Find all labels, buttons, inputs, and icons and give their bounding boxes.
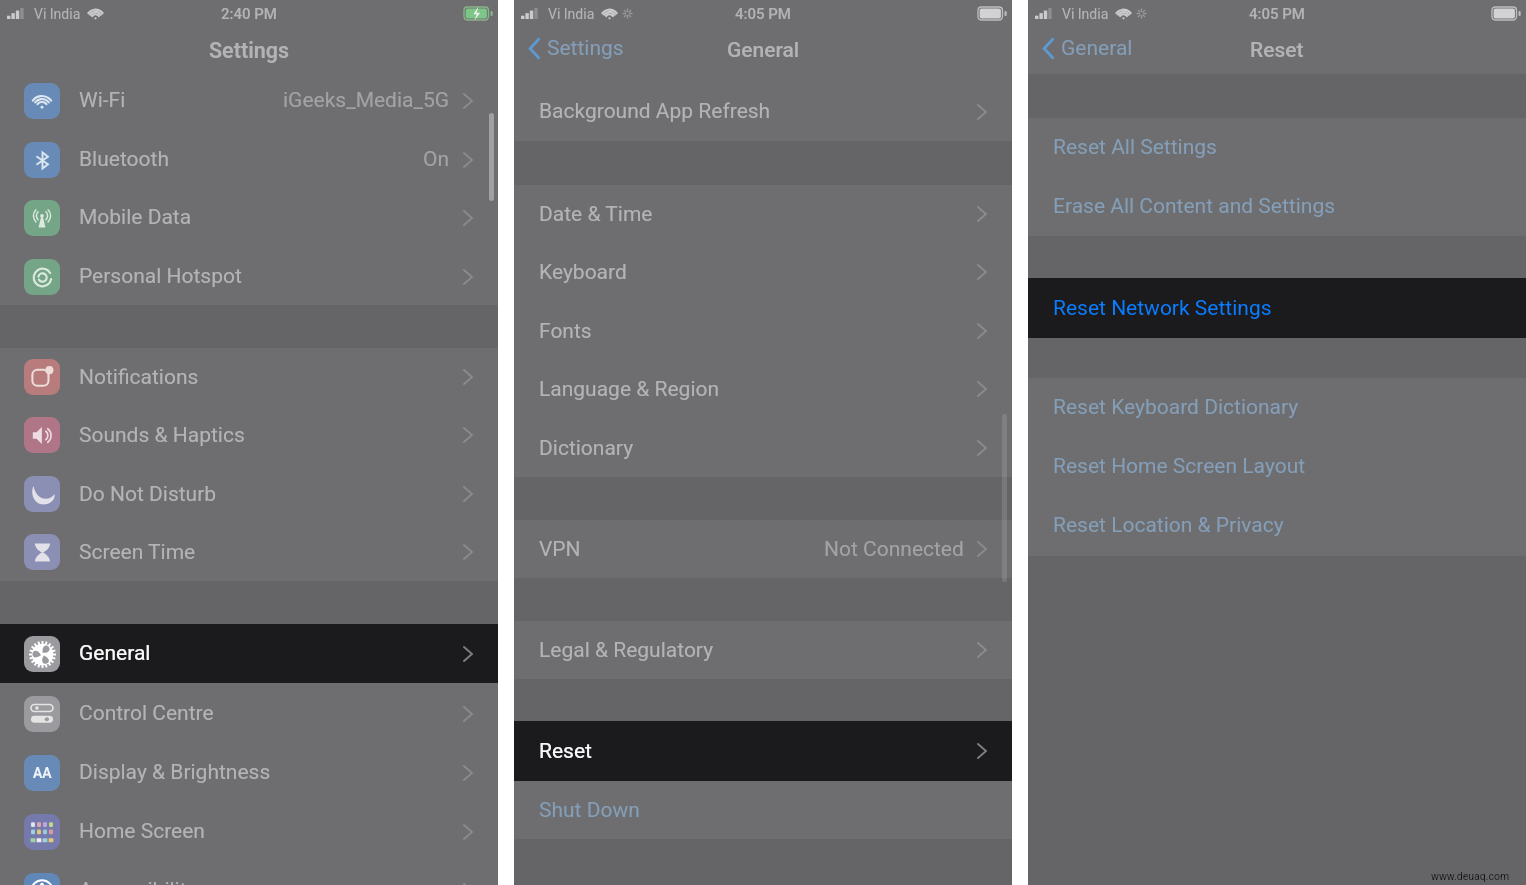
staticText: Reset Home Screen Layout — [1053, 454, 1306, 479]
staticText: Control Centre — [79, 701, 214, 726]
button[interactable]: Sounds & Haptics — [0, 406, 498, 464]
button[interactable]: Accessibility — [0, 861, 498, 885]
staticText: AA — [33, 765, 52, 781]
button[interactable]: Control Centre — [0, 684, 498, 743]
button[interactable]: Wi-Fi — [0, 71, 498, 130]
staticText: iGeeks_Media_5G — [283, 88, 450, 113]
button[interactable]: Erase All Content and Settings — [1028, 177, 1526, 236]
staticText: Do Not Disturb — [79, 482, 217, 507]
staticText: Bluetooth — [79, 147, 169, 172]
staticText: Home Screen — [79, 819, 205, 844]
button[interactable]: Reset All Settings — [1028, 118, 1526, 177]
staticText: 4:05 PM — [1249, 5, 1305, 23]
staticText: Not Connected — [824, 537, 964, 562]
staticText: Reset All Settings — [1053, 135, 1217, 160]
staticText: Reset — [539, 739, 592, 764]
button[interactable]: Bluetooth — [0, 130, 498, 189]
staticText: 2:40 PM — [221, 5, 277, 23]
staticText: Reset Location & Privacy — [1053, 513, 1284, 538]
button[interactable]: Date & Time — [514, 185, 1012, 243]
staticText: Legal & Regulatory — [539, 638, 714, 663]
staticText: Reset Network Settings — [1053, 296, 1272, 321]
staticText: Fonts — [539, 319, 592, 344]
button[interactable]: Fonts — [514, 302, 1012, 360]
staticText: Screen Time — [79, 540, 196, 565]
staticText: General — [727, 38, 800, 63]
button[interactable]: Keyboard — [514, 243, 1012, 301]
button[interactable]: Reset — [514, 721, 1012, 781]
button[interactable]: Reset Home Screen Layout — [1028, 437, 1526, 496]
staticText: Reset — [1250, 38, 1304, 63]
staticText: Reset Keyboard Dictionary — [1053, 395, 1299, 420]
button[interactable]: Mobile Data — [0, 188, 498, 247]
button[interactable]: Legal & Regulatory — [514, 621, 1012, 679]
staticText: On — [423, 147, 450, 172]
staticText: Vi India — [34, 6, 81, 22]
button[interactable]: Reset Keyboard Dictionary — [1028, 378, 1526, 437]
staticText: Date & Time — [539, 202, 653, 227]
button[interactable]: Home Screen — [0, 802, 498, 861]
staticText: Shut Down — [539, 798, 640, 823]
button[interactable]: Back to Settings — [525, 32, 628, 65]
staticText: Language & Region — [539, 377, 720, 402]
staticText: Notifications — [79, 365, 199, 390]
button[interactable]: Back to General — [1039, 32, 1137, 65]
staticText: Personal Hotspot — [79, 264, 242, 289]
button[interactable]: Reset Location & Privacy — [1028, 496, 1526, 555]
staticText: Vi India — [1062, 6, 1109, 22]
staticText: Display & Brightness — [79, 760, 271, 785]
staticText: 4:05 PM — [735, 5, 791, 23]
button[interactable]: Background App Refresh — [514, 82, 1012, 141]
staticText: General — [79, 641, 151, 666]
staticText: VPN — [539, 537, 581, 562]
staticText: Wi-Fi — [79, 88, 126, 113]
button[interactable]: Personal Hotspot — [0, 247, 498, 306]
staticText: Background App Refresh — [539, 99, 771, 124]
staticText: Erase All Content and Settings — [1053, 194, 1336, 219]
staticText: Sounds & Haptics — [79, 423, 245, 448]
button[interactable]: VPN — [514, 520, 1012, 578]
staticText: Accessibility — [79, 878, 197, 885]
button[interactable]: Notifications — [0, 348, 498, 406]
staticText: Dictionary — [539, 436, 634, 461]
button[interactable]: Language & Region — [514, 360, 1012, 418]
staticText: Vi India — [548, 6, 595, 22]
button[interactable]: Do Not Disturb — [0, 465, 498, 523]
staticText: Settings — [209, 38, 290, 63]
staticText: Keyboard — [539, 260, 627, 285]
button[interactable]: Reset Network Settings — [1028, 278, 1526, 338]
button[interactable]: AA — [0, 743, 498, 802]
staticText: Mobile Data — [79, 205, 192, 230]
staticText: Settings — [547, 36, 624, 61]
staticText: General — [1061, 36, 1133, 61]
staticText: www.deuaq.com — [1431, 870, 1510, 882]
button[interactable]: Screen Time — [0, 523, 498, 581]
button[interactable]: General — [0, 624, 498, 683]
button[interactable]: Dictionary — [514, 419, 1012, 477]
button[interactable]: Shut Down — [514, 781, 1012, 840]
